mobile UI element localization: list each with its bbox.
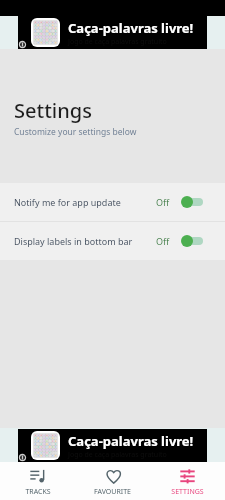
staticText: Caça-palavras livre!	[68, 19, 194, 37]
button[interactable]: FAVOURITE	[75, 462, 150, 500]
staticText: Caça-palavras livre!	[68, 432, 194, 450]
staticText: Customize your settings below	[14, 126, 137, 138]
button[interactable]: Advertisement: Caca-palavras livre!	[18, 16, 207, 49]
staticText: Off	[156, 196, 170, 208]
button[interactable]: Toggle	[181, 195, 203, 209]
staticText: Display labels in bottom bar	[14, 235, 133, 247]
staticText: Off	[156, 235, 170, 247]
button[interactable]: SETTINGS	[150, 462, 225, 500]
staticText: TRACKS	[25, 487, 51, 497]
button[interactable]: Notify me for app update	[0, 183, 225, 221]
button[interactable]: TRACKS	[0, 462, 75, 500]
staticText: FAVOURITE	[94, 487, 131, 497]
staticText: Notify me for app update	[14, 196, 121, 208]
button[interactable]: Advertisement: Caca-palavras livre!	[18, 429, 207, 462]
button[interactable]: Toggle	[181, 234, 203, 248]
staticText: SETTINGS	[171, 487, 204, 497]
staticText: Settings	[14, 97, 92, 124]
button[interactable]: Display labels in bottom bar	[0, 222, 225, 260]
